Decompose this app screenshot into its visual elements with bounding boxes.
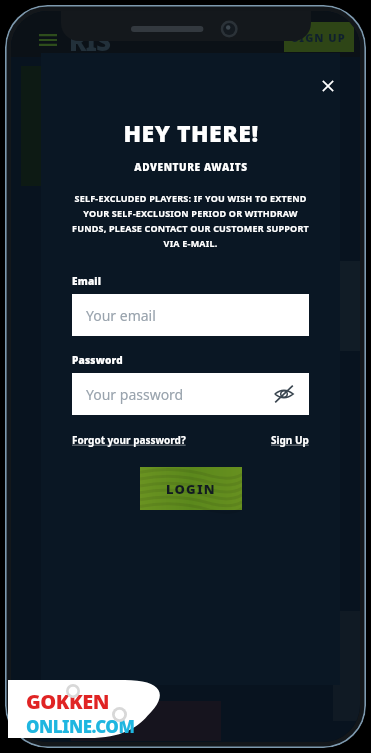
staticText: Password (72, 353, 123, 367)
button[interactable]: Sign Up (271, 433, 309, 447)
button[interactable]: Forgot your password? (72, 433, 186, 447)
staticText: Your email (86, 306, 295, 325)
staticText: ADVENTURE AWAITS (134, 160, 248, 174)
button[interactable]: Menu (37, 29, 59, 51)
staticText: SIGN UP (292, 30, 346, 45)
staticText: Forgot your password? (72, 433, 186, 447)
button[interactable]: Close (315, 73, 341, 99)
button[interactable]: Your email (72, 294, 309, 336)
staticText: GOKKEN (26, 688, 109, 715)
staticText: ONLINE.COM (26, 715, 135, 738)
staticText: Sign Up (271, 433, 309, 447)
button[interactable]: Your password (72, 373, 309, 415)
button[interactable]: Show password (273, 383, 295, 405)
staticText: Your password (86, 385, 273, 404)
staticText: RIS (69, 23, 111, 58)
button[interactable]: SIGN UP (284, 22, 354, 52)
staticText: SELF-EXCLUDED PLAYERS: IF YOU WISH TO EX… (72, 192, 309, 249)
staticText: LOGIN (166, 480, 216, 498)
staticText: HEY THERE! (123, 117, 259, 148)
button[interactable]: LOGIN (140, 467, 242, 510)
staticText: Email (72, 274, 102, 288)
